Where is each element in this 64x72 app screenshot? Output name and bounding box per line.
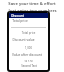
staticText: Value after discount: [12, 53, 42, 57]
staticText: Save your time & effort: [8, 1, 56, 7]
staticText: 1,000: [11, 46, 46, 50]
staticText: Total price: [11, 31, 46, 35]
staticText: Total price: [12, 19, 28, 23]
staticText: Discount value: [12, 38, 35, 42]
staticText: Second Text: [21, 64, 37, 68]
staticText: Just enter two numbers: [8, 8, 57, 14]
staticText: Discount: [11, 14, 24, 18]
staticText: 34,100: [11, 60, 46, 62]
